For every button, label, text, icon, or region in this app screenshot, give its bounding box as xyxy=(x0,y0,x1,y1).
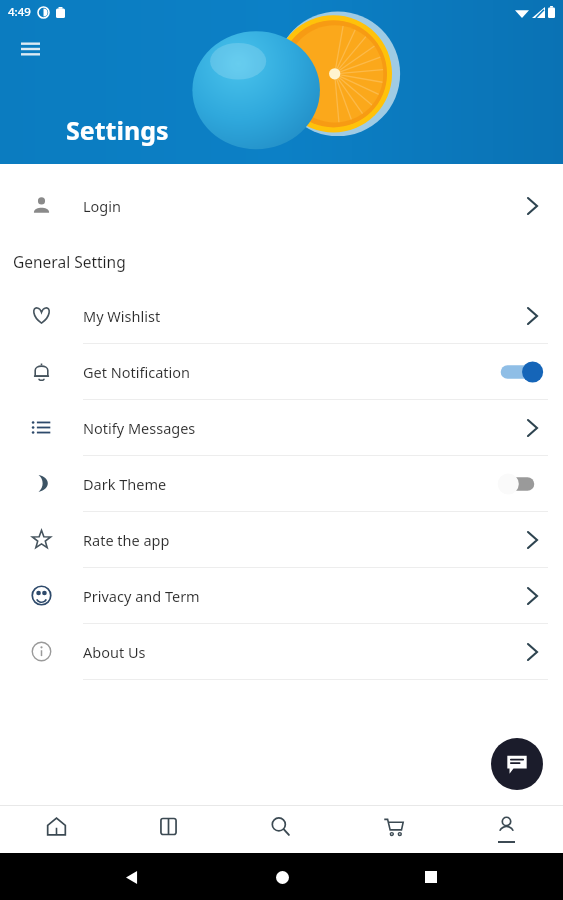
button[interactable]: Get Notification xyxy=(0,344,563,400)
button[interactable]: Rate the app xyxy=(0,512,563,568)
button[interactable]: Home xyxy=(265,860,299,894)
button[interactable]: About Us xyxy=(0,624,563,680)
staticText: About Us xyxy=(83,642,146,662)
button[interactable]: Menu xyxy=(14,33,46,65)
staticText: General Setting xyxy=(13,251,126,272)
button[interactable]: Recents xyxy=(414,860,448,894)
button[interactable] xyxy=(499,361,541,383)
staticText: Privacy and Term xyxy=(83,586,200,606)
button[interactable] xyxy=(499,473,541,495)
button[interactable]: My Wishlist xyxy=(0,288,563,344)
staticText: Rate the app xyxy=(83,530,170,550)
button[interactable]: Privacy and Term xyxy=(0,568,563,624)
staticText: 4:49 xyxy=(8,4,31,20)
button[interactable]: Back xyxy=(115,860,149,894)
button[interactable]: Cart xyxy=(337,806,450,853)
staticText: Settings xyxy=(66,113,169,147)
button[interactable]: Account xyxy=(450,806,563,853)
staticText: Notify Messages xyxy=(83,418,196,438)
button[interactable]: Dark Theme xyxy=(0,456,563,512)
staticText: Dark Theme xyxy=(83,474,167,494)
button[interactable]: Login xyxy=(0,178,563,233)
button[interactable]: Notify Messages xyxy=(0,400,563,456)
button[interactable]: Search xyxy=(224,806,337,853)
button[interactable]: Catalog xyxy=(112,806,224,853)
staticText: Login xyxy=(83,196,121,216)
button[interactable]: Chat xyxy=(491,738,543,790)
staticText: Get Notification xyxy=(83,362,191,382)
button[interactable]: Home xyxy=(0,806,112,853)
staticText: My Wishlist xyxy=(83,306,161,326)
